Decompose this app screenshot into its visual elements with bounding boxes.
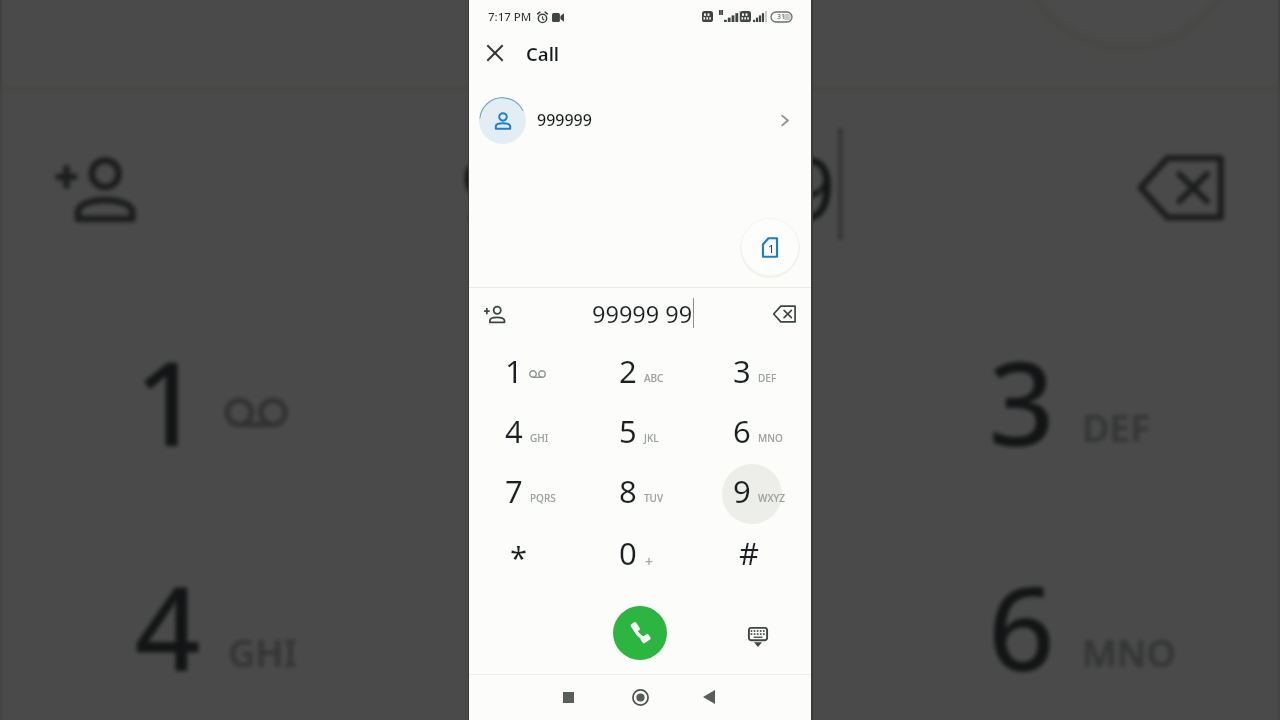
button[interactable]: 8 xyxy=(583,461,697,521)
button[interactable]: 999999 xyxy=(469,84,811,156)
button[interactable]: 2 xyxy=(583,341,697,401)
button[interactable]: Recents xyxy=(551,680,585,714)
button[interactable]: Backspace xyxy=(766,296,802,332)
button[interactable]: Close xyxy=(473,31,516,74)
staticText: 31 xyxy=(777,12,786,22)
staticText: ABC xyxy=(655,401,730,454)
staticText: # xyxy=(739,532,760,574)
button[interactable]: Add contact xyxy=(30,120,164,255)
button[interactable]: 1 xyxy=(0,289,426,513)
button[interactable]: * xyxy=(469,523,583,583)
staticText: ABC xyxy=(644,371,664,385)
button[interactable]: 4 xyxy=(469,401,583,461)
button[interactable]: # xyxy=(697,523,811,583)
staticText: MNO xyxy=(758,431,783,445)
button[interactable]: 5 xyxy=(583,401,697,461)
staticText: + xyxy=(645,552,654,571)
staticText: JKL xyxy=(655,626,715,678)
button[interactable]: Call xyxy=(613,606,667,660)
button[interactable]: 4 xyxy=(0,513,426,720)
staticText: 7:17 PM xyxy=(488,9,532,25)
staticText: 6 xyxy=(733,410,751,452)
staticText: 3 xyxy=(988,323,1056,480)
staticText: 4 xyxy=(134,547,202,705)
staticText: DEF xyxy=(758,371,777,385)
button[interactable]: Add contact xyxy=(477,296,513,332)
staticText: 8 xyxy=(619,470,637,512)
staticText: 1 xyxy=(134,323,202,480)
staticText: Call xyxy=(526,41,560,66)
staticText: 1 xyxy=(505,350,523,392)
staticText: 0 xyxy=(619,532,637,574)
staticText: DEF xyxy=(1082,401,1153,454)
staticText: 2 xyxy=(561,323,629,480)
button[interactable]: 9 xyxy=(697,461,811,521)
button[interactable]: Back xyxy=(692,680,726,714)
staticText: JKL xyxy=(644,431,659,445)
staticText: 6 xyxy=(988,547,1056,705)
staticText: 99999 99 xyxy=(460,128,838,248)
staticText: 4 xyxy=(505,410,523,452)
staticText: 99999 99 xyxy=(592,298,693,330)
button[interactable]: 3 xyxy=(697,341,811,401)
staticText: 2 xyxy=(619,350,637,392)
button[interactable]: 6 xyxy=(697,401,811,461)
button[interactable]: 6 xyxy=(853,513,1280,720)
button[interactable]: 0 xyxy=(583,523,697,583)
button[interactable]: 2 xyxy=(426,289,853,513)
button[interactable]: Home xyxy=(623,680,657,714)
button[interactable]: 5 xyxy=(426,513,853,720)
staticText: TUV xyxy=(644,491,664,505)
button[interactable]: Backspace xyxy=(1112,120,1247,255)
staticText: 1 xyxy=(768,241,775,256)
button[interactable]: Hide keypad xyxy=(740,619,776,655)
staticText: 999999 xyxy=(537,109,592,131)
staticText: 9 xyxy=(733,470,751,512)
button[interactable]: Select SIM 1 xyxy=(742,219,798,275)
staticText: GHI xyxy=(228,626,299,678)
staticText: GHI xyxy=(530,431,549,445)
staticText: PQRS xyxy=(530,491,556,505)
staticText: MNO xyxy=(1082,626,1179,678)
button[interactable]: 1 xyxy=(469,341,583,401)
staticText: WXYZ xyxy=(758,491,786,505)
staticText: 7 xyxy=(505,470,523,512)
button[interactable]: 7 xyxy=(469,461,583,521)
staticText: * xyxy=(510,536,528,578)
staticText: 5 xyxy=(619,410,637,452)
button[interactable]: 3 xyxy=(853,289,1280,513)
staticText: 5 xyxy=(561,547,629,705)
staticText: 3 xyxy=(733,350,751,392)
